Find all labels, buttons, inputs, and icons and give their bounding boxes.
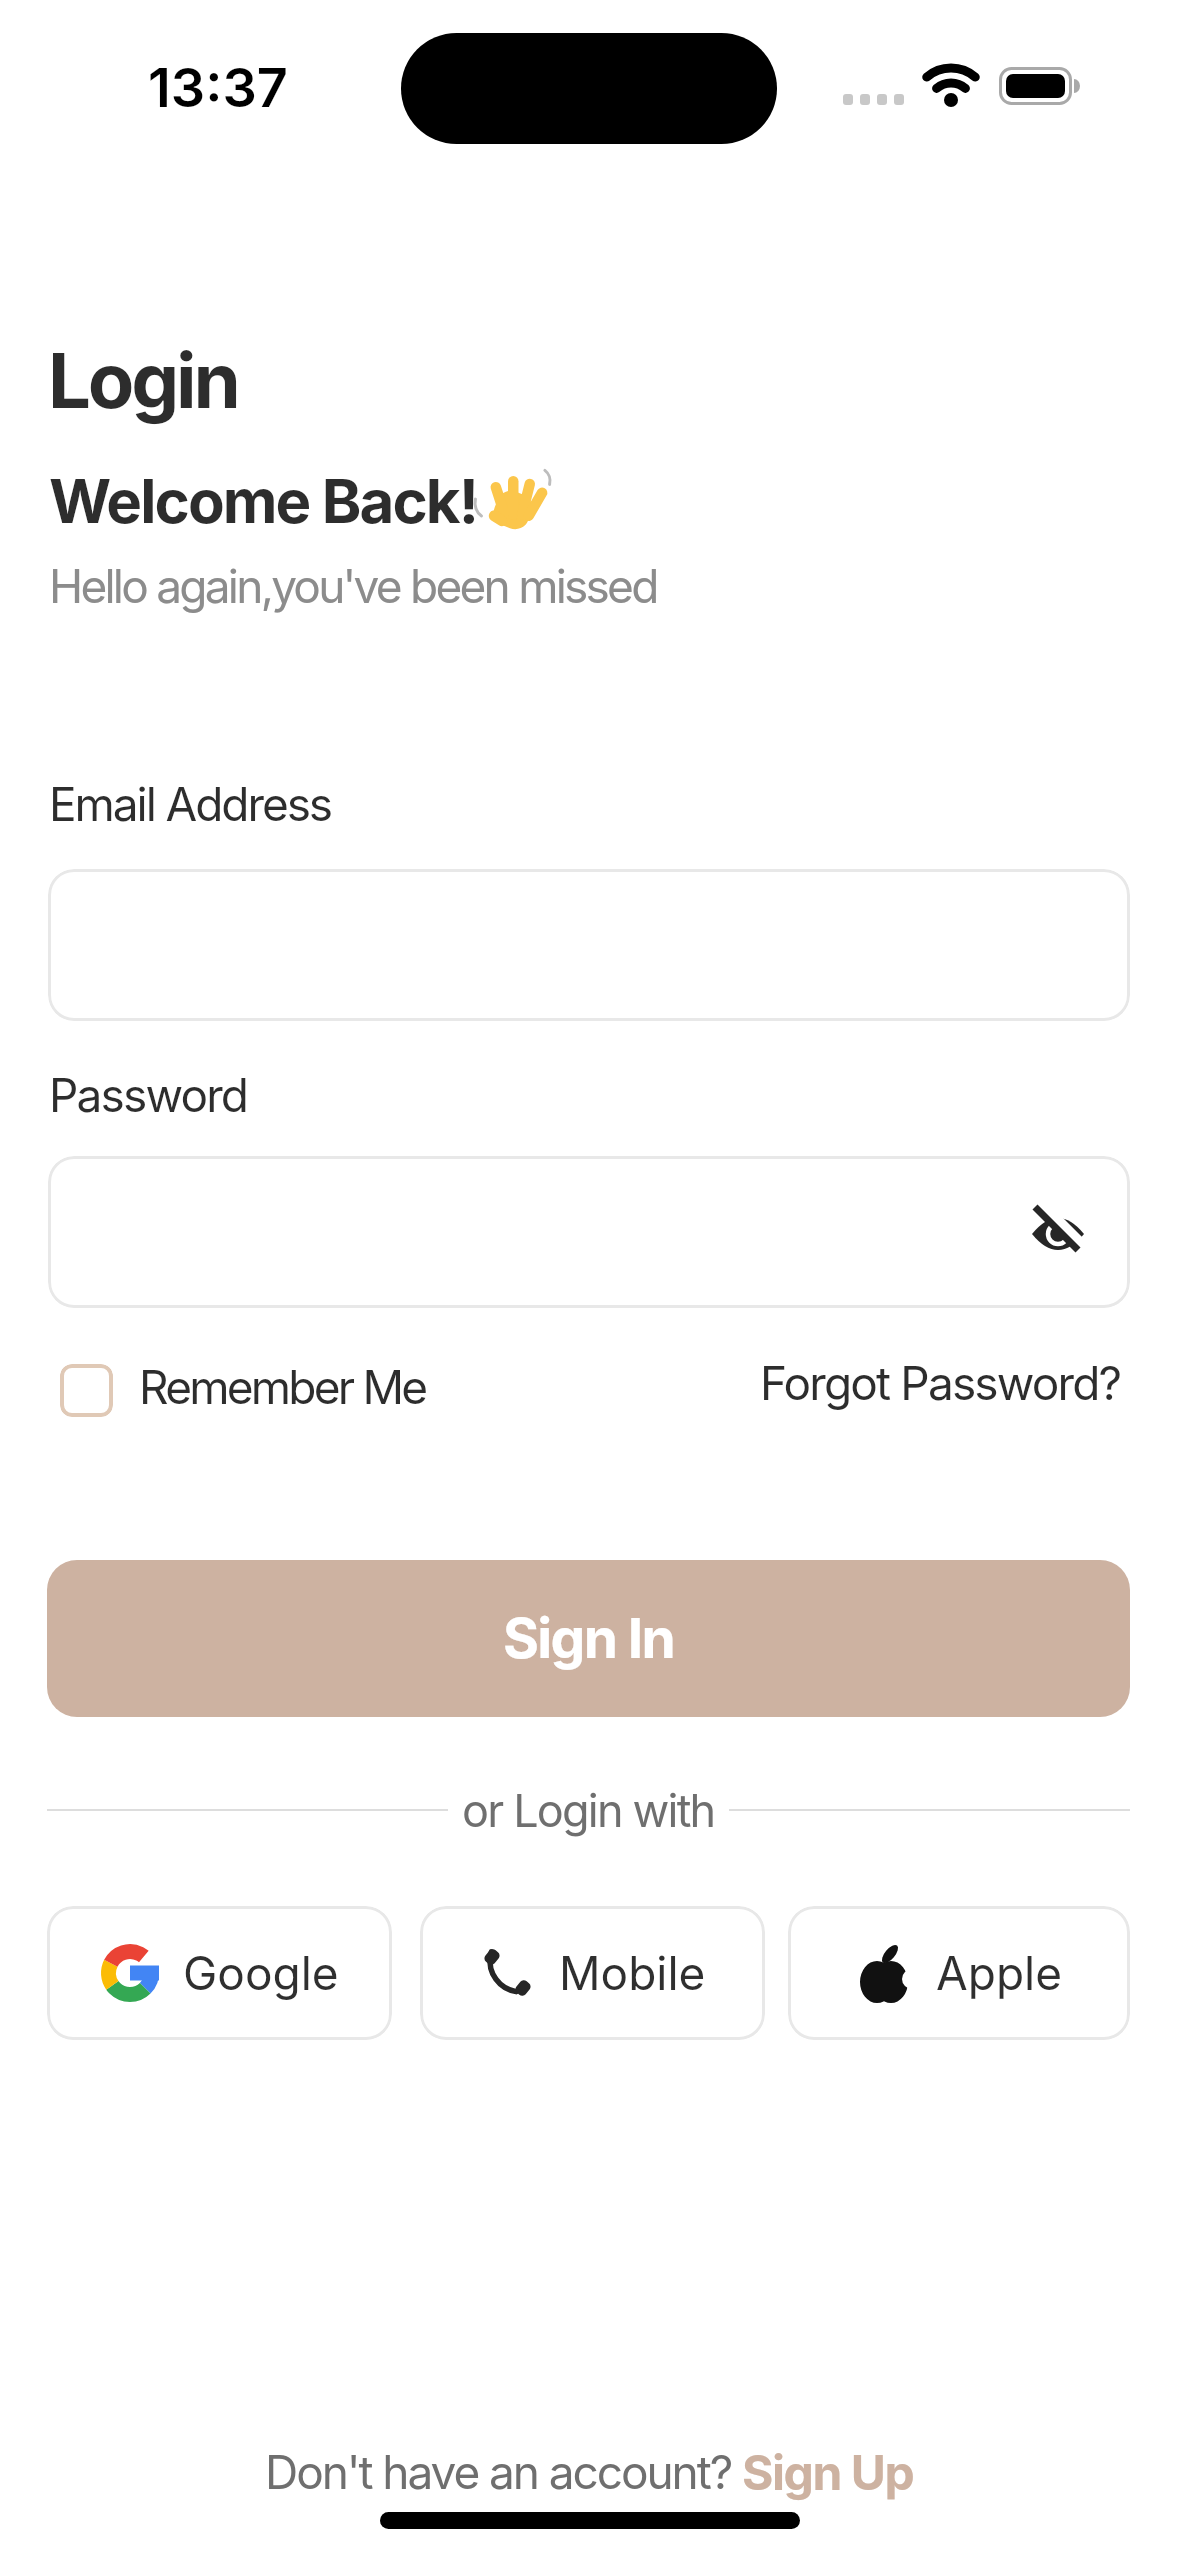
- staticText: or Login with: [462, 1783, 715, 1837]
- staticText: 13:37: [148, 55, 288, 120]
- staticText: Don't have an account?: [265, 2444, 742, 2500]
- button[interactable]: Remember Me: [60, 1362, 426, 1418]
- staticText: Remember Me: [139, 1359, 426, 1415]
- staticText: Welcome Back!: [49, 465, 478, 538]
- button[interactable]: Apple: [788, 1906, 1130, 2040]
- staticText: Sign Up: [742, 2443, 914, 2501]
- button[interactable]: [48, 1156, 1130, 1308]
- button[interactable]: Sign In: [47, 1560, 1130, 1717]
- staticText: Mobile: [559, 1945, 706, 2001]
- staticText: Login: [48, 334, 238, 426]
- staticText: Google: [183, 1945, 339, 2001]
- staticText: Hello again,you've been missed: [49, 558, 657, 614]
- button[interactable]: [1030, 1204, 1086, 1260]
- button[interactable]: Don't have an account?: [265, 2443, 914, 2501]
- button[interactable]: Mobile: [420, 1906, 765, 2040]
- staticText: Email Address: [49, 776, 332, 832]
- staticText: Sign In: [503, 1605, 675, 1672]
- staticText: Password: [49, 1067, 248, 1123]
- button[interactable]: Forgot Password?: [760, 1355, 1121, 1411]
- staticText: Forgot Password?: [760, 1355, 1121, 1411]
- staticText: Apple: [936, 1945, 1063, 2001]
- button[interactable]: [48, 869, 1130, 1021]
- button[interactable]: Google: [47, 1906, 392, 2040]
